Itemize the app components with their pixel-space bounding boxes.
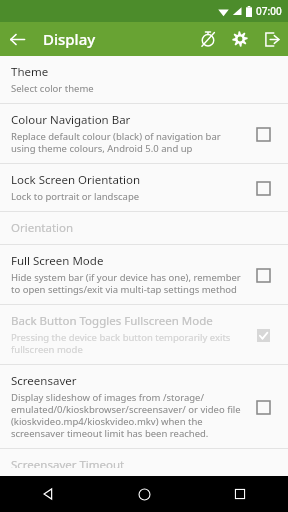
button[interactable]: Back	[0, 476, 96, 512]
button[interactable]: Colour Navigation Bar	[0, 104, 288, 163]
button[interactable]: Recents	[192, 476, 288, 512]
staticText: 07:00	[256, 4, 282, 18]
staticText: Pressing the device back button temporar…	[11, 331, 242, 356]
button[interactable]: Exit	[256, 23, 288, 55]
staticText: Theme	[11, 64, 49, 80]
staticText: Colour Navigation Bar	[11, 112, 131, 128]
button[interactable]: Screensaver Timeout	[0, 449, 288, 476]
staticText: Screensaver	[11, 373, 77, 389]
button[interactable]: Back	[0, 22, 34, 56]
staticText: Lock to portrait or landscape	[11, 190, 140, 203]
staticText: Replace default colour (black) of naviga…	[11, 130, 242, 155]
button[interactable]: Theme	[0, 56, 288, 103]
button[interactable]: Back Button Toggles Fullscreen Mode	[0, 305, 288, 364]
staticText: Lock Screen Orientation	[11, 172, 141, 188]
staticText: Hide system bar (if your device has one)…	[11, 271, 242, 296]
staticText: Select color theme	[11, 82, 94, 95]
staticText: Back Button Toggles Fullscreen Mode	[11, 313, 213, 329]
button[interactable]: Screensaver	[0, 365, 288, 448]
staticText: Display	[43, 29, 96, 49]
staticText: Display slideshow of images from /storag…	[11, 391, 242, 440]
staticText: Orientation	[11, 220, 74, 236]
staticText: Full Screen Mode	[11, 253, 104, 269]
button[interactable]: Full Screen Mode	[0, 245, 288, 304]
button[interactable]: Settings	[224, 23, 256, 55]
button[interactable]: Lock Screen Orientation	[0, 164, 288, 211]
staticText: Screensaver Timeout	[11, 457, 125, 468]
button[interactable]: Home	[96, 476, 192, 512]
button[interactable]: Timer off	[192, 23, 224, 55]
button[interactable]: Orientation	[0, 212, 288, 244]
